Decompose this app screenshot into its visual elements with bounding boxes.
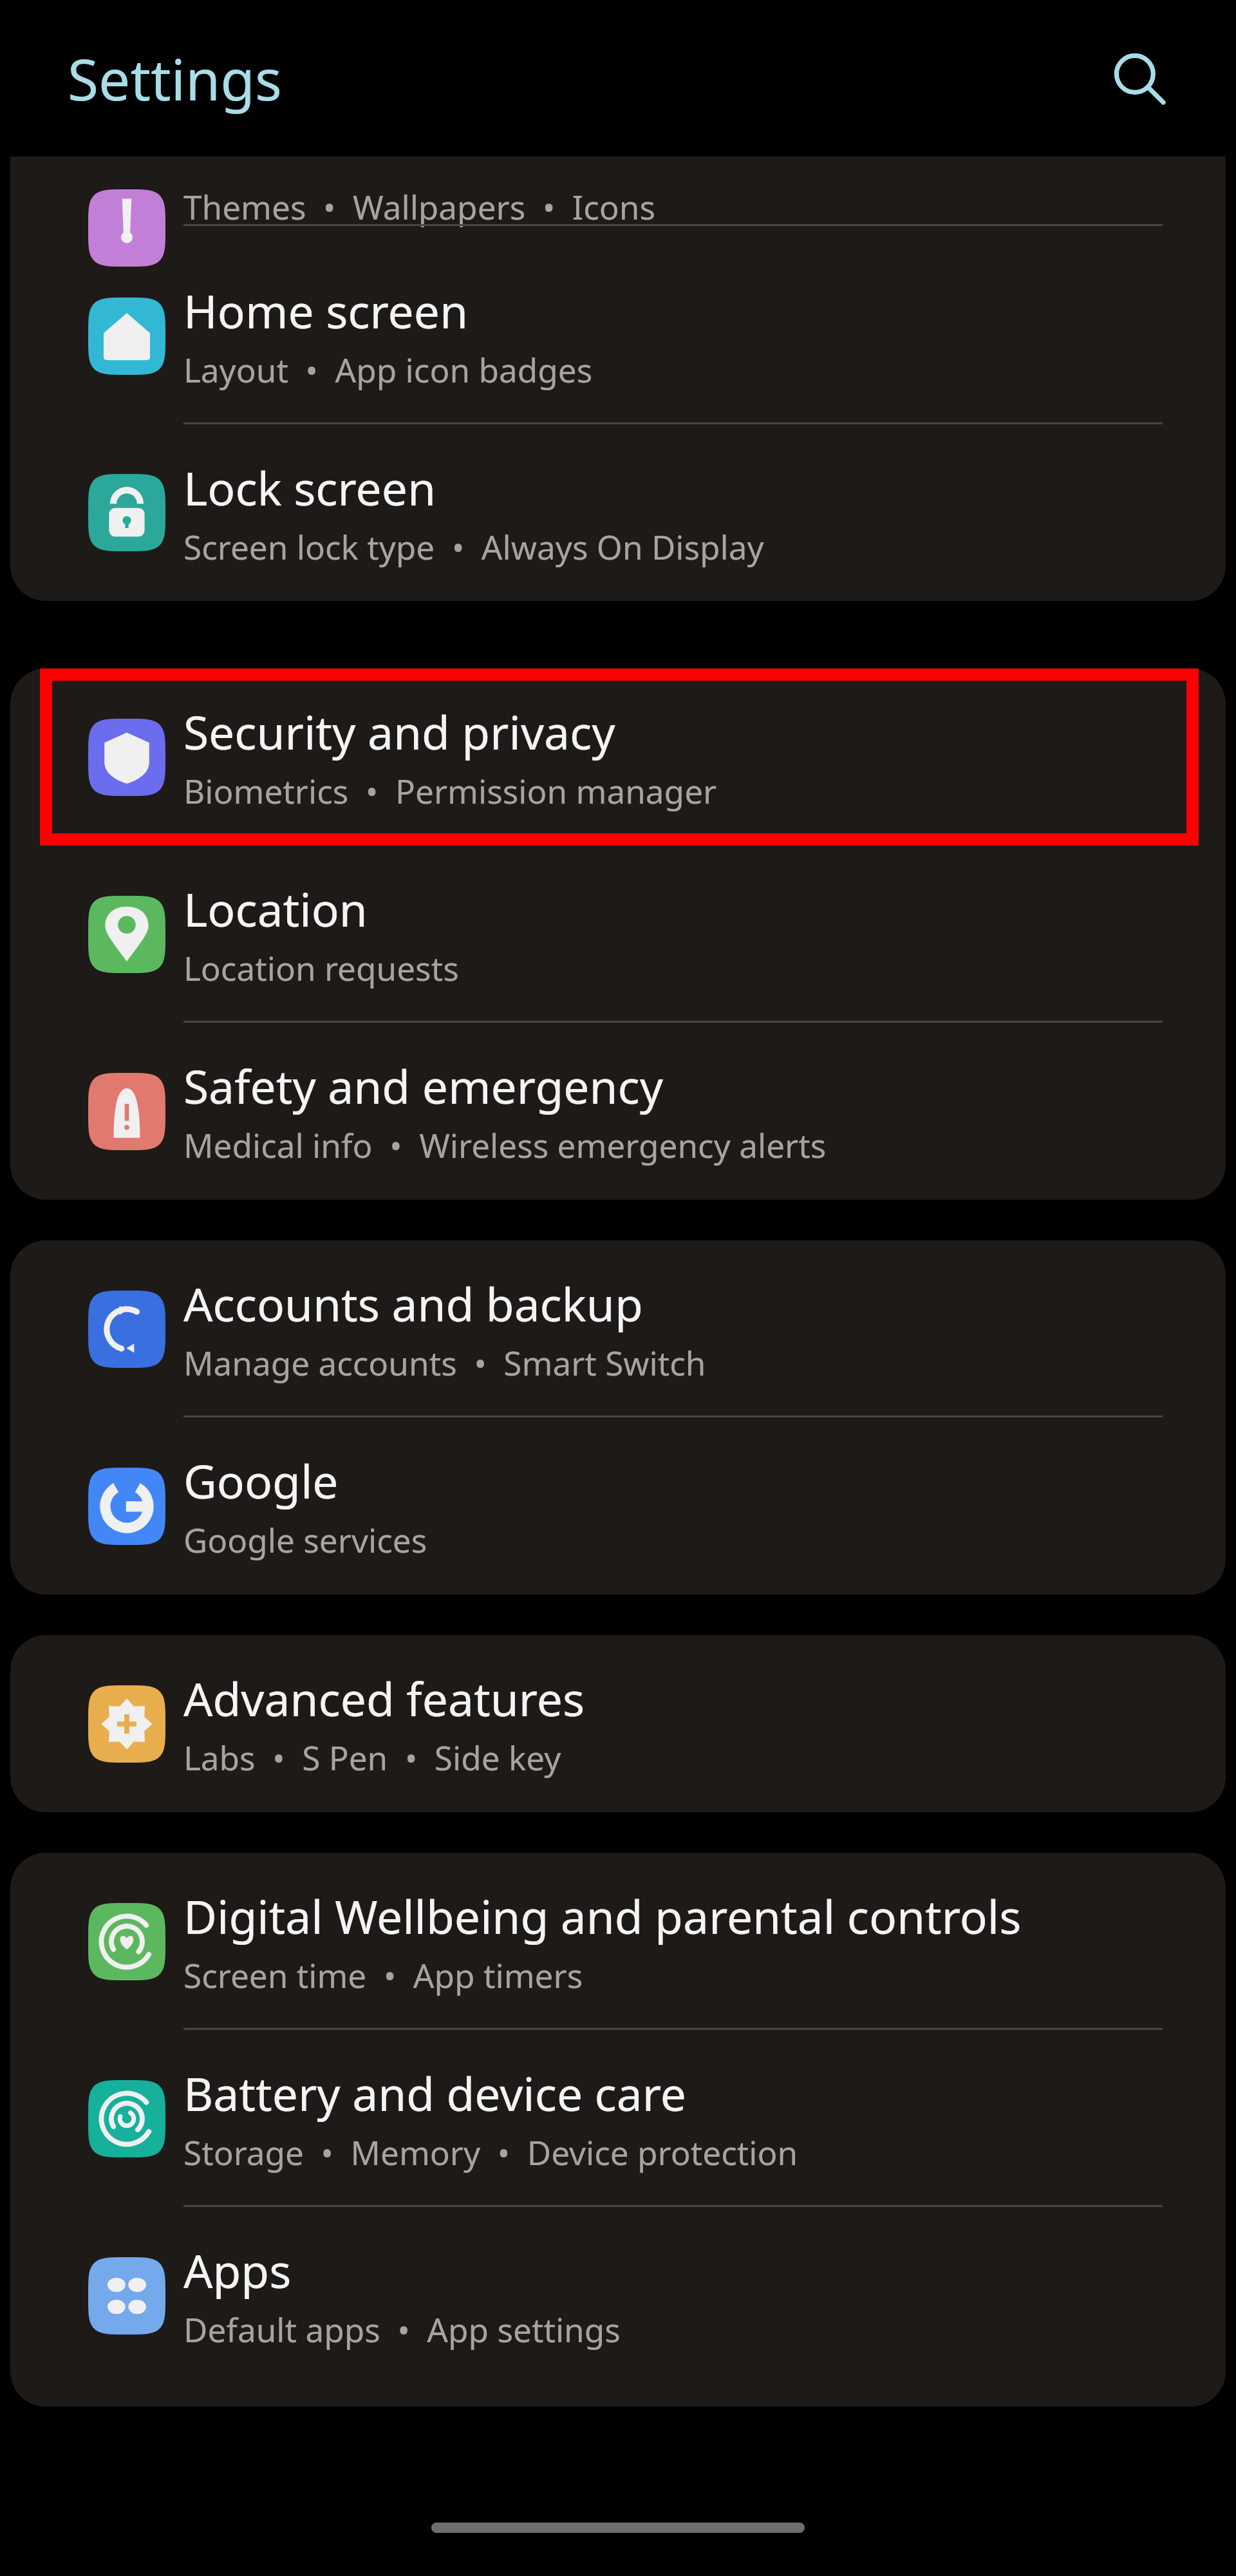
staticText: Apps	[183, 2239, 292, 2302]
button[interactable]: Safety and emergency	[10, 1023, 1226, 1200]
staticText: Google services	[183, 1517, 427, 1562]
staticText: Settings	[68, 40, 282, 117]
staticText: Screen lock type • Always On Display	[183, 524, 764, 569]
staticText: Default apps • App settings	[183, 2307, 621, 2352]
staticText: Biometrics • Permission manager	[183, 768, 717, 813]
staticText: Advanced features	[183, 1667, 585, 1730]
staticText: Digital Wellbeing and parental controls	[183, 1885, 1022, 1947]
button[interactable]: Google	[10, 1417, 1226, 1595]
button[interactable]: Apps	[10, 2207, 1226, 2384]
staticText: Manage accounts • Smart Switch	[183, 1340, 706, 1385]
staticText: Screen time • App timers	[183, 1953, 583, 1998]
staticText: Accounts and backup	[183, 1273, 643, 1335]
staticText: Location	[183, 878, 368, 940]
staticText: Battery and device care	[183, 2062, 686, 2125]
button[interactable]: Search	[1094, 33, 1184, 124]
button[interactable]: Accounts and backup	[10, 1240, 1226, 1417]
button[interactable]: Home screen	[10, 247, 1226, 424]
button[interactable]: Location	[10, 846, 1226, 1023]
button[interactable]: Lock screen	[10, 424, 1226, 601]
staticText: Location requests	[183, 945, 459, 990]
staticText: Safety and emergency	[183, 1055, 663, 1117]
button[interactable]: Advanced features	[10, 1635, 1226, 1812]
button[interactable]: Battery and device care	[10, 2030, 1226, 2207]
button[interactable]: Digital Wellbeing and parental controls	[10, 1853, 1226, 2030]
staticText: Storage • Memory • Device protection	[183, 2130, 798, 2175]
staticText: Security and privacy	[183, 701, 615, 763]
button[interactable]: Security and privacy	[10, 668, 1226, 846]
staticText: Themes • Wallpapers • Icons	[183, 184, 656, 229]
staticText: Medical info • Wireless emergency alerts	[183, 1122, 827, 1168]
staticText: Lock screen	[183, 457, 436, 519]
staticText: Labs • S Pen • Side key	[183, 1735, 561, 1780]
staticText: Google	[183, 1450, 339, 1512]
staticText: Layout • App icon badges	[183, 347, 593, 392]
staticText: Home screen	[183, 279, 468, 342]
button[interactable]: Themes • Wallpapers • Icons	[10, 156, 1226, 239]
